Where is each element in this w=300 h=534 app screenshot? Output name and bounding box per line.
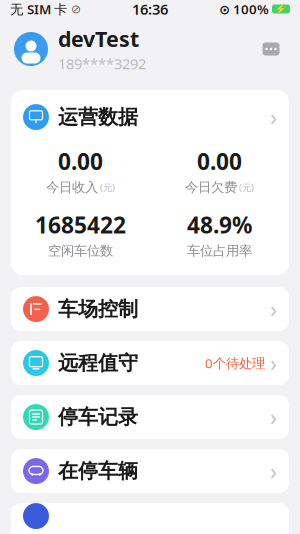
staticText: devTest bbox=[58, 25, 139, 53]
button[interactable]: 运营数据 bbox=[11, 90, 289, 275]
staticText: 空闲车位数 bbox=[48, 243, 113, 259]
staticText: ⚡ bbox=[275, 4, 287, 14]
staticText: › bbox=[270, 102, 277, 132]
button[interactable]: 消息 bbox=[256, 34, 286, 64]
staticText: › bbox=[270, 456, 277, 486]
staticText: › bbox=[270, 348, 277, 378]
staticText: 无 SIM 卡 bbox=[10, 0, 67, 18]
staticText: 16:36 bbox=[132, 0, 168, 19]
staticText: 0.00 bbox=[197, 146, 242, 176]
staticText: (元) bbox=[239, 181, 254, 194]
staticText: 在停车辆 bbox=[58, 459, 138, 483]
button[interactable]: 在停车辆 bbox=[11, 449, 289, 493]
button[interactable]: 远程值守 bbox=[11, 341, 289, 385]
staticText: › bbox=[270, 294, 277, 324]
staticText: ⊘ bbox=[67, 2, 81, 16]
staticText: 运营数据 bbox=[58, 105, 138, 129]
staticText: 车位占用率 bbox=[187, 243, 252, 259]
staticText: (元) bbox=[100, 181, 115, 194]
staticText: 0.00 bbox=[58, 146, 103, 176]
staticText: › bbox=[270, 402, 277, 432]
button[interactable]: 停车记录 bbox=[11, 395, 289, 439]
staticText: 远程值守 bbox=[58, 351, 138, 375]
staticText: 1685422 bbox=[35, 210, 126, 240]
staticText: 车场控制 bbox=[58, 297, 138, 321]
staticText: 今日收入 bbox=[46, 179, 98, 196]
staticText: 0个待处理 bbox=[205, 354, 265, 372]
staticText: 189****3292 bbox=[58, 54, 146, 73]
staticText: 48.9% bbox=[187, 210, 252, 240]
staticText: 停车记录 bbox=[58, 405, 138, 429]
button[interactable]: 车场控制 bbox=[11, 287, 289, 331]
staticText: 今日欠费 bbox=[185, 179, 237, 196]
staticText: ⊙ 100% bbox=[219, 0, 269, 18]
